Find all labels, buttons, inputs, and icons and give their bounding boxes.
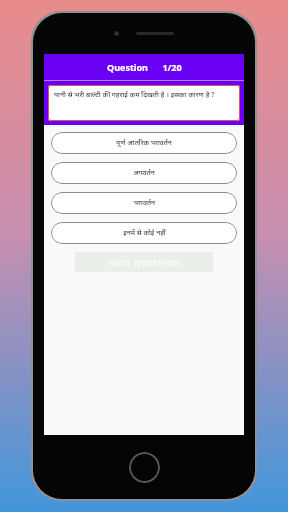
staticText: इनमें से कोई नहीं: [123, 228, 166, 238]
button[interactable]: परावर्तन: [51, 192, 237, 214]
staticText: 1/20: [162, 61, 182, 73]
staticText: परावर्तन: [134, 198, 155, 208]
staticText: Question: [107, 61, 148, 73]
staticText: पानी से भरी बाल्टी की गहराई कम दिखती है …: [54, 90, 234, 100]
button[interactable]: Home: [129, 452, 160, 483]
button[interactable]: NEXT QUESTION: [75, 252, 213, 272]
staticText: पूर्ण आंतरिक परावर्तन: [116, 138, 172, 148]
staticText: अपवर्तन: [133, 168, 155, 178]
button[interactable]: पूर्ण आंतरिक परावर्तन: [51, 132, 237, 154]
button[interactable]: इनमें से कोई नहीं: [51, 222, 237, 244]
staticText: NEXT QUESTION: [108, 257, 181, 268]
button[interactable]: अपवर्तन: [51, 162, 237, 184]
